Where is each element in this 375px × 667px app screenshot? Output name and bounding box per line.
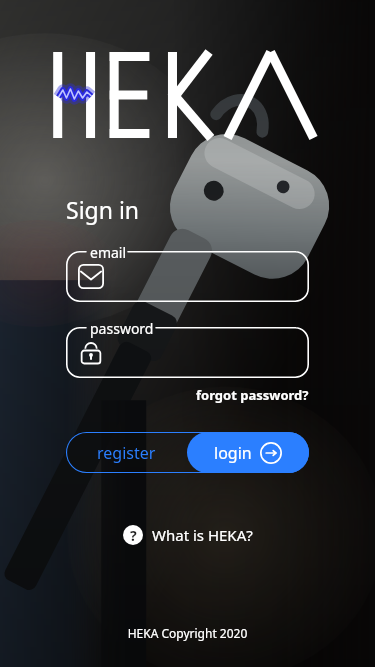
staticText: ? [130,526,137,545]
staticText: Sign in [66,194,140,225]
button[interactable]: ? [115,521,261,549]
staticText: login [214,442,252,464]
button[interactable]: register [66,432,187,473]
other: Password [78,340,104,365]
staticText: What is HEKA? [152,525,253,545]
staticText: HEKA Copyright 2020 [0,625,375,641]
staticText: register [97,442,156,464]
button[interactable]: forgot password? [196,384,309,406]
button[interactable]: email [66,243,309,302]
button[interactable]: login [187,432,309,473]
staticText: password [90,319,154,338]
other: Email [78,264,104,289]
staticText: forgot password? [196,386,309,404]
staticText: email [90,243,127,262]
button[interactable]: password [66,319,309,378]
